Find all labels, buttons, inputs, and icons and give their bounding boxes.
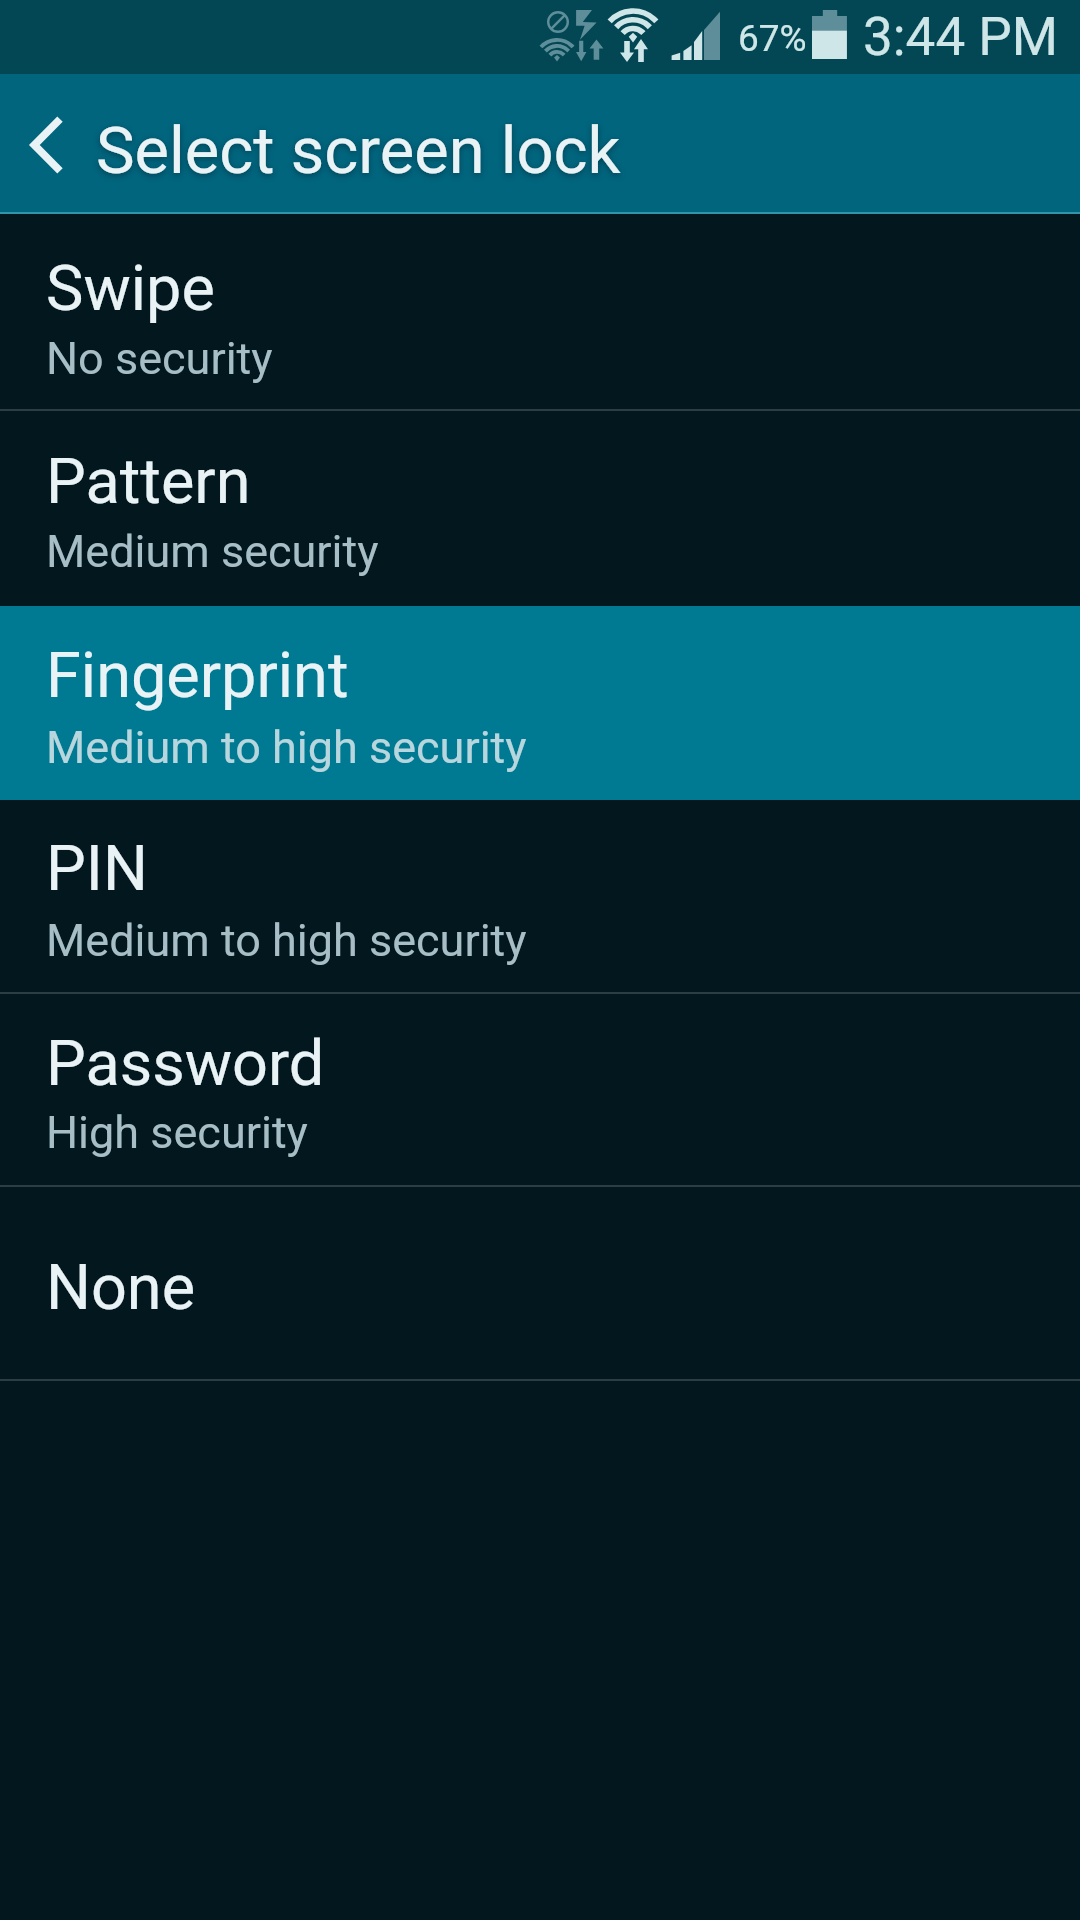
staticText: PIN: [46, 832, 148, 906]
staticText: Swipe: [46, 252, 215, 326]
staticText: Medium to high security: [46, 721, 527, 774]
staticText: None: [46, 1251, 196, 1325]
staticText: Medium to high security: [46, 914, 527, 967]
button[interactable]: Navigate up: [0, 74, 90, 212]
staticText: 67%: [738, 17, 807, 60]
staticText: No security: [46, 332, 273, 385]
button[interactable]: None: [0, 1187, 1080, 1381]
staticText: Fingerprint: [46, 639, 349, 713]
staticText: Medium security: [46, 525, 379, 578]
staticText: 3:44 PM: [863, 6, 1059, 68]
button[interactable]: PIN: [0, 800, 1080, 994]
staticText: High security: [46, 1106, 308, 1159]
button[interactable]: Swipe: [0, 214, 1080, 411]
button[interactable]: Pattern: [0, 411, 1080, 606]
button[interactable]: Fingerprint: [0, 606, 1080, 800]
staticText: Select screen lock: [96, 113, 621, 189]
staticText: Pattern: [46, 445, 251, 519]
staticText: Password: [46, 1027, 325, 1101]
button[interactable]: Password: [0, 994, 1080, 1187]
